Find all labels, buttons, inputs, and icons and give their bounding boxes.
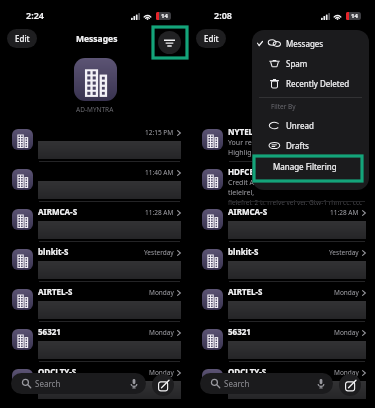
staticText: blnkit-S [38, 246, 69, 257]
staticText: AIRMCA-S [228, 206, 268, 217]
staticText: Monday [334, 328, 359, 337]
staticText: Edit [15, 33, 30, 44]
button[interactable]: HDFCB [190, 161, 375, 201]
button[interactable]: AIRTEL-S [0, 281, 190, 321]
staticText: 2:24 [26, 9, 44, 21]
staticText: Manage Filtering [273, 161, 337, 172]
staticText: 12:15 PM [145, 128, 174, 137]
button[interactable]: Search [11, 373, 146, 394]
staticText: AIRTEL-S [38, 286, 73, 297]
staticText: Messages [286, 38, 324, 49]
staticText: Yesterday [144, 248, 174, 257]
button[interactable] [74, 58, 117, 101]
button[interactable]: Recently Deleted [252, 73, 369, 93]
button[interactable]: NYTEL [190, 121, 375, 161]
staticText: Monday [149, 368, 174, 377]
button[interactable]: Edit [7, 29, 37, 48]
staticText: 11:40 AM [145, 168, 174, 177]
button[interactable]: blnkit-S [190, 241, 375, 281]
button[interactable]: Messages [252, 33, 369, 53]
staticText: 11:28 AM [330, 208, 359, 217]
staticText: AIRTEL-S [228, 286, 263, 297]
button[interactable]: Compose message [152, 374, 174, 396]
staticText: AD-MYNTRA [76, 105, 114, 114]
staticText: Spam [286, 58, 308, 69]
staticText: Monday [334, 288, 359, 297]
button[interactable]: 56321 [0, 321, 190, 361]
staticText: NYTEL [228, 126, 254, 137]
button[interactable]: Unread [252, 115, 369, 135]
staticText: Highligh [228, 148, 256, 158]
staticText: 14 [351, 12, 358, 20]
button[interactable]: ODCLTY-S [0, 361, 190, 401]
staticText: ODCLTY-S [228, 366, 267, 377]
staticText: Filter By [271, 102, 296, 111]
button[interactable]: 56321 [190, 321, 375, 361]
button[interactable]: 12:15 PM [0, 121, 190, 161]
staticText: 11:28 AM [145, 208, 174, 217]
staticText: Unread [286, 120, 314, 131]
button[interactable]: AIRMCA-S [0, 201, 190, 241]
staticText: HDFCB [228, 166, 255, 177]
staticText: Drafts [286, 140, 309, 151]
button[interactable]: Compose message [339, 374, 361, 396]
staticText: Monday [149, 328, 174, 337]
staticText: tlelelrel, [228, 188, 255, 198]
button[interactable]: AIRMCA-S [190, 201, 375, 241]
staticText: Your rec [228, 138, 255, 148]
staticText: Yesterday [329, 248, 359, 257]
staticText: 2:08 [214, 9, 232, 21]
button[interactable]: Manage Filtering [252, 155, 369, 177]
button[interactable]: blnkit-S [0, 241, 190, 281]
button[interactable]: 11:40 AM [0, 161, 190, 201]
button[interactable]: Filter [158, 31, 181, 54]
button[interactable]: Spam [252, 53, 369, 73]
staticText: Credit Al [228, 178, 256, 188]
button[interactable]: Edit [196, 29, 226, 48]
button[interactable]: AIRTEL-S [190, 281, 375, 321]
staticText: Search [35, 378, 61, 389]
staticText: AIRMCA-S [38, 206, 78, 217]
staticText: ODCLTY-S [38, 366, 77, 377]
staticText: Recently Deleted [286, 78, 350, 89]
staticText: 56321 [228, 326, 251, 337]
staticText: 56321 [38, 326, 61, 337]
button[interactable]: Search [200, 373, 333, 394]
button[interactable]: Drafts [252, 135, 369, 155]
staticText: Search [224, 378, 250, 389]
staticText: 14 [161, 12, 168, 20]
staticText: Monday [334, 368, 359, 377]
staticText: flelefrel. 2 tr. rrelve vel ver. Gtw-1 r… [228, 198, 363, 207]
staticText: blnkit-S [228, 246, 259, 257]
staticText: Monday [149, 288, 174, 297]
staticText: Edit [204, 33, 219, 44]
staticText: Messages [76, 33, 118, 45]
button[interactable]: ODCLTY-S [190, 361, 375, 401]
